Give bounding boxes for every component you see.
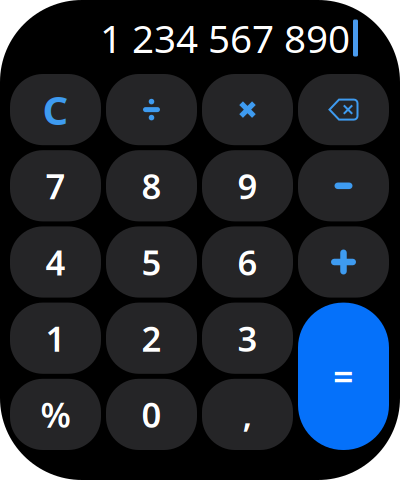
button[interactable]: Plus (298, 226, 389, 298)
button[interactable]: 8 (106, 150, 197, 221)
staticText: , (242, 391, 252, 437)
button[interactable]: 4 (10, 226, 101, 298)
staticText: 5 (141, 239, 161, 285)
staticText: 8 (141, 163, 161, 209)
button[interactable]: % (10, 379, 101, 450)
button[interactable]: 5 (106, 226, 197, 298)
staticText: 6 (237, 239, 257, 285)
button[interactable]: 0 (106, 379, 197, 450)
button[interactable]: 3 (202, 303, 293, 374)
staticText: 9 (237, 163, 257, 209)
staticText: 1 (45, 315, 65, 361)
staticText: C (42, 83, 68, 136)
staticText: 7 (45, 163, 65, 209)
staticText: 1 234 567 890 (100, 12, 350, 64)
button[interactable]: 2 (106, 303, 197, 374)
button[interactable]: Minus (298, 150, 389, 221)
staticText: % (40, 391, 70, 437)
button[interactable]: Multiply (202, 74, 293, 145)
staticText: 2 (141, 315, 161, 361)
staticText: 0 (141, 391, 161, 437)
button[interactable]: 6 (202, 226, 293, 298)
staticText: 4 (45, 239, 65, 285)
button[interactable]: C (10, 74, 101, 145)
button[interactable]: 1 (10, 303, 101, 374)
staticText: = (333, 352, 354, 400)
button[interactable]: , (202, 379, 293, 450)
staticText: 3 (237, 315, 257, 361)
button[interactable]: Delete (298, 74, 389, 145)
button[interactable]: 9 (202, 150, 293, 221)
button[interactable]: Divide (106, 74, 197, 145)
button[interactable]: = (298, 303, 389, 450)
button[interactable]: 7 (10, 150, 101, 221)
